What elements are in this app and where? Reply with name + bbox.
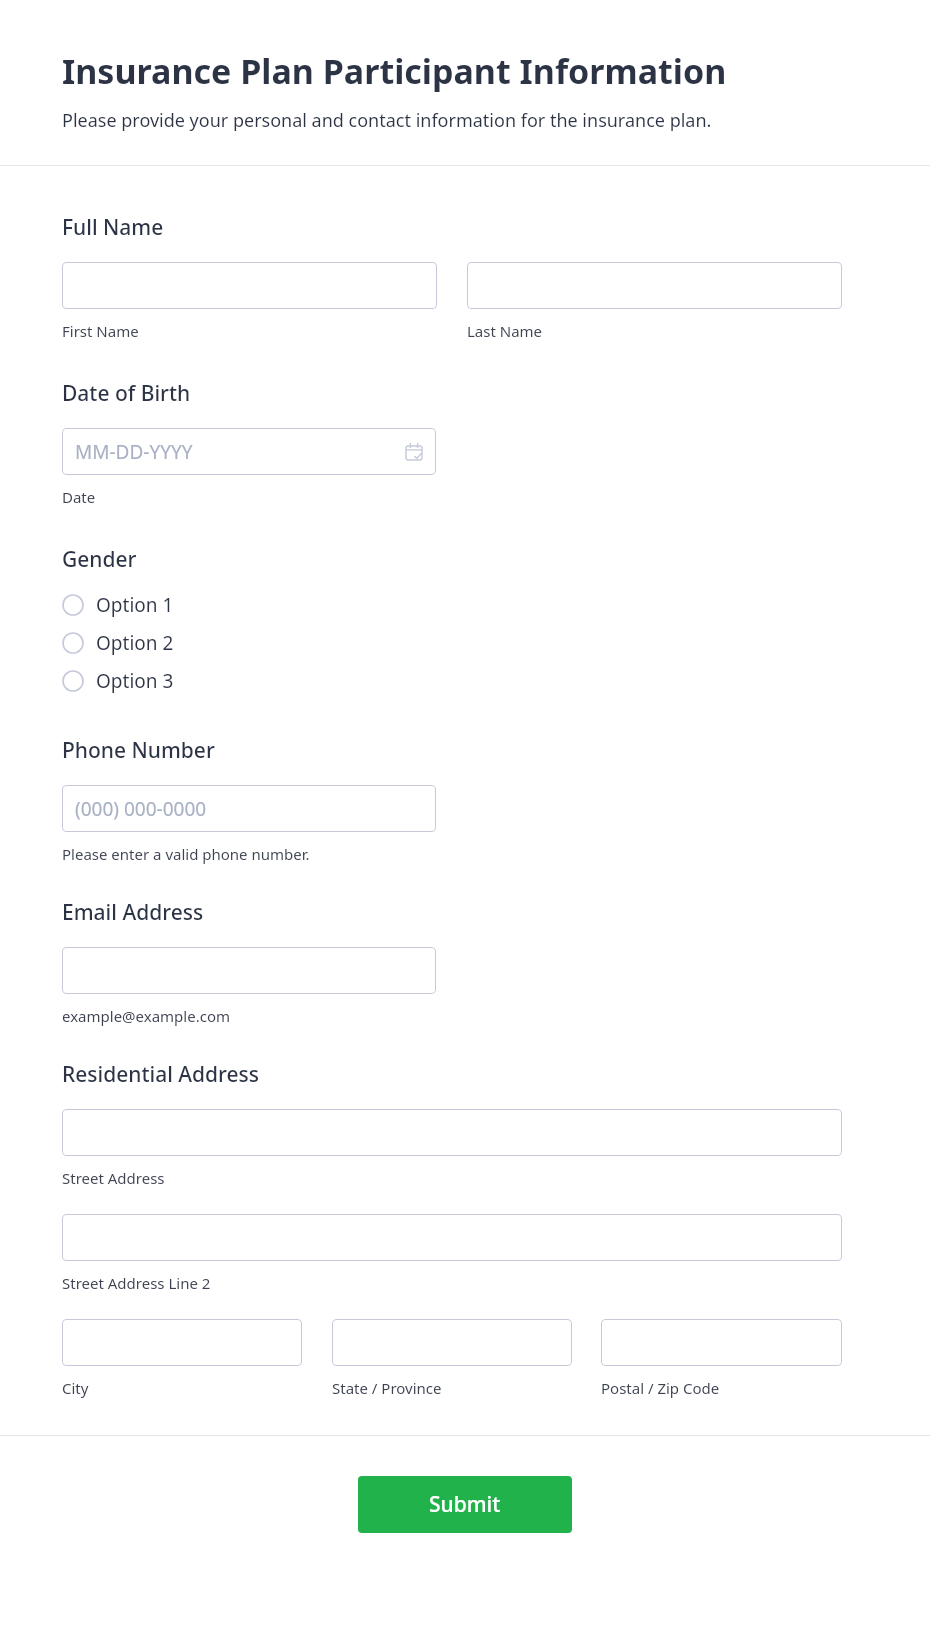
staticText: Please enter a valid phone number. [62, 844, 310, 864]
button[interactable]: Submit [358, 1476, 572, 1533]
button[interactable] [62, 1319, 302, 1366]
staticText: Last Name [467, 321, 543, 341]
button[interactable] [601, 1319, 842, 1366]
staticText: State / Province [332, 1378, 442, 1398]
staticText: Date of Birth [62, 379, 191, 408]
staticText: Postal / Zip Code [601, 1378, 720, 1398]
staticText: Submit [429, 1490, 501, 1519]
button[interactable]: MM-DD-YYYY [62, 428, 436, 475]
staticText: Option 3 [96, 668, 174, 694]
button[interactable]: Option 1 [62, 586, 322, 624]
staticText: First Name [62, 321, 139, 341]
staticText: Full Name [62, 213, 164, 242]
staticText: Date [62, 487, 96, 507]
staticText: Phone Number [62, 736, 215, 765]
button[interactable] [62, 262, 437, 309]
staticText: Street Address [62, 1168, 165, 1188]
button[interactable]: Option 2 [62, 624, 322, 662]
staticText: example@example.com [62, 1006, 230, 1026]
other: Open calendar [405, 443, 423, 461]
button[interactable] [62, 1109, 842, 1156]
button[interactable] [62, 947, 436, 994]
staticText: Insurance Plan Participant Information [62, 48, 727, 94]
staticText: Street Address Line 2 [62, 1273, 211, 1293]
staticText: City [62, 1378, 89, 1398]
button[interactable] [62, 1214, 842, 1261]
staticText: Option 2 [96, 630, 174, 656]
staticText: Gender [62, 545, 137, 574]
button[interactable]: (000) 000-0000 [62, 785, 436, 832]
button[interactable] [332, 1319, 572, 1366]
staticText: Option 1 [96, 592, 174, 618]
button[interactable]: Option 3 [62, 662, 322, 700]
staticText: Email Address [62, 898, 204, 927]
staticText: Please provide your personal and contact… [62, 108, 712, 133]
staticText: MM-DD-YYYY [75, 439, 193, 465]
staticText: (000) 000-0000 [75, 796, 207, 822]
staticText: Residential Address [62, 1060, 260, 1089]
button[interactable] [467, 262, 842, 309]
